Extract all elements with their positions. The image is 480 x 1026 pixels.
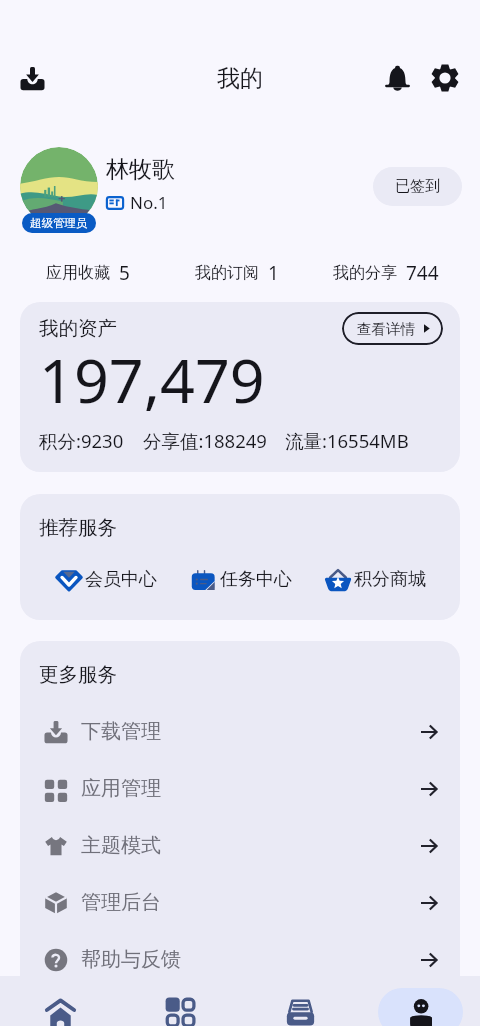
button[interactable]: Apps — [138, 988, 223, 1026]
button[interactable]: 任务中心 — [191, 566, 292, 592]
staticText: 任务中心 — [220, 568, 292, 591]
staticText: 我的订阅 — [195, 263, 259, 283]
button[interactable]: 管理后台 — [20, 874, 460, 931]
button[interactable]: 积分商城 — [325, 566, 426, 592]
staticText: 我的 — [217, 64, 263, 93]
button[interactable]: Profile — [378, 988, 463, 1026]
button[interactable]: Avatar — [20, 147, 98, 225]
staticText: 我的资产 — [39, 316, 117, 341]
staticText: 林牧歌 — [106, 155, 175, 184]
staticText: No.1 — [130, 191, 168, 214]
staticText: 积分商城 — [354, 568, 426, 591]
staticText: 197,479 — [39, 338, 265, 421]
button[interactable]: 应用管理 — [20, 760, 460, 817]
staticText: 会员中心 — [85, 568, 157, 591]
button[interactable]: 会员中心 — [56, 566, 157, 592]
staticText: 分享值:188249 — [143, 428, 267, 453]
staticText: 应用收藏 — [46, 263, 110, 283]
staticText: 管理后台 — [81, 890, 161, 915]
button[interactable]: 我的订阅 — [162, 255, 311, 291]
button[interactable]: 我的分享 — [311, 255, 460, 291]
staticText: 下载管理 — [81, 719, 161, 744]
staticText: 主题模式 — [81, 833, 161, 858]
button[interactable]: 帮助与反馈 — [20, 931, 460, 988]
button[interactable]: 主题模式 — [20, 817, 460, 874]
staticText: 已签到 — [395, 177, 440, 196]
staticText: 帮助与反馈 — [81, 947, 181, 972]
staticText: 更多服务 — [39, 662, 117, 687]
staticText: 5 — [119, 260, 130, 286]
button[interactable]: Downloads — [12, 58, 52, 98]
button[interactable]: 查看详情 — [342, 312, 443, 345]
staticText: 积分:9230 — [39, 428, 124, 453]
staticText: 1 — [268, 260, 279, 286]
staticText: 我的分享 — [333, 263, 397, 283]
staticText: 流量:16554MB — [285, 428, 409, 453]
staticText: 推荐服务 — [39, 515, 117, 540]
staticText: 应用管理 — [81, 776, 161, 801]
staticText: 查看详情 — [357, 320, 415, 338]
staticText: 744 — [406, 260, 439, 286]
button[interactable]: Library — [258, 988, 343, 1026]
button[interactable]: 已签到 — [373, 167, 462, 206]
button[interactable]: 应用收藏 — [14, 255, 162, 291]
button[interactable]: Notifications — [376, 57, 418, 99]
button[interactable]: Home — [18, 988, 103, 1026]
button[interactable]: Settings — [424, 57, 466, 99]
button[interactable]: 下载管理 — [20, 703, 460, 760]
staticText: 超级管理员 — [30, 216, 88, 230]
